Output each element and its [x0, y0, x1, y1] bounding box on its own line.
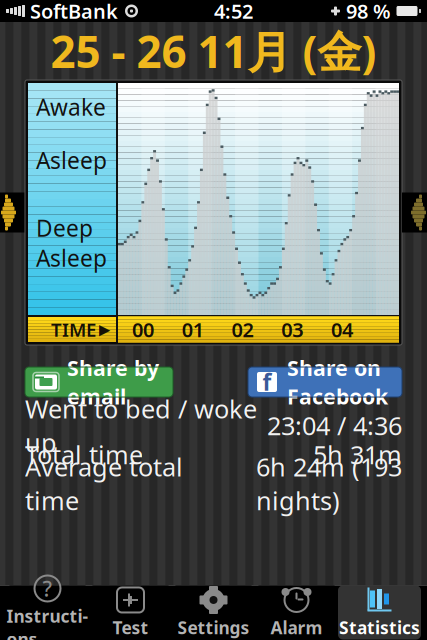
- staticText: Share by email: [67, 354, 159, 410]
- staticText: 98 %: [346, 0, 391, 24]
- button[interactable]: f: [248, 367, 402, 397]
- button[interactable]: Statistics: [338, 585, 421, 639]
- staticText: 04: [331, 316, 353, 343]
- button[interactable]: Test: [89, 585, 172, 639]
- staticText: Asleep: [36, 243, 107, 273]
- button[interactable]: Previous night: [0, 192, 25, 232]
- button[interactable]: Share by email: [25, 367, 173, 397]
- staticText: Average total time: [25, 450, 183, 517]
- staticText: Deep: [36, 213, 93, 243]
- staticText: 6h 24m (193 nights): [256, 450, 402, 517]
- staticText: ▶: [99, 321, 110, 338]
- staticText: 23:04 / 4:36: [267, 409, 402, 442]
- staticText: f: [262, 367, 271, 397]
- staticText: Test: [112, 616, 148, 639]
- button[interactable]: Alarm: [255, 585, 338, 639]
- staticText: Total time: [25, 438, 143, 471]
- button[interactable]: Next night: [402, 192, 427, 232]
- button[interactable]: Settings: [172, 585, 255, 639]
- staticText: 01: [182, 316, 204, 343]
- staticText: Awake: [36, 92, 106, 122]
- staticText: Statistics: [339, 616, 420, 639]
- staticText: 03: [281, 316, 303, 343]
- staticText: Went to bed / woke up: [25, 392, 257, 459]
- button[interactable]: ?: [6, 585, 89, 639]
- staticText: SoftBank: [30, 0, 118, 24]
- staticText: Share on Facebook: [287, 354, 388, 410]
- button[interactable]: 25 - 26 11月 (金): [0, 22, 427, 80]
- staticText: 00: [132, 316, 154, 343]
- staticText: Asleep: [36, 145, 107, 175]
- staticText: Alarm: [270, 616, 322, 639]
- staticText: Settings: [177, 616, 249, 639]
- staticText: TIME: [51, 317, 96, 342]
- staticText: Instructions: [6, 604, 88, 640]
- staticText: 25 - 26 11月 (金): [50, 22, 376, 80]
- staticText: ?: [42, 574, 52, 603]
- staticText: 02: [231, 316, 253, 343]
- staticText: 5h 31m: [313, 438, 402, 471]
- staticText: 4:52: [214, 0, 253, 24]
